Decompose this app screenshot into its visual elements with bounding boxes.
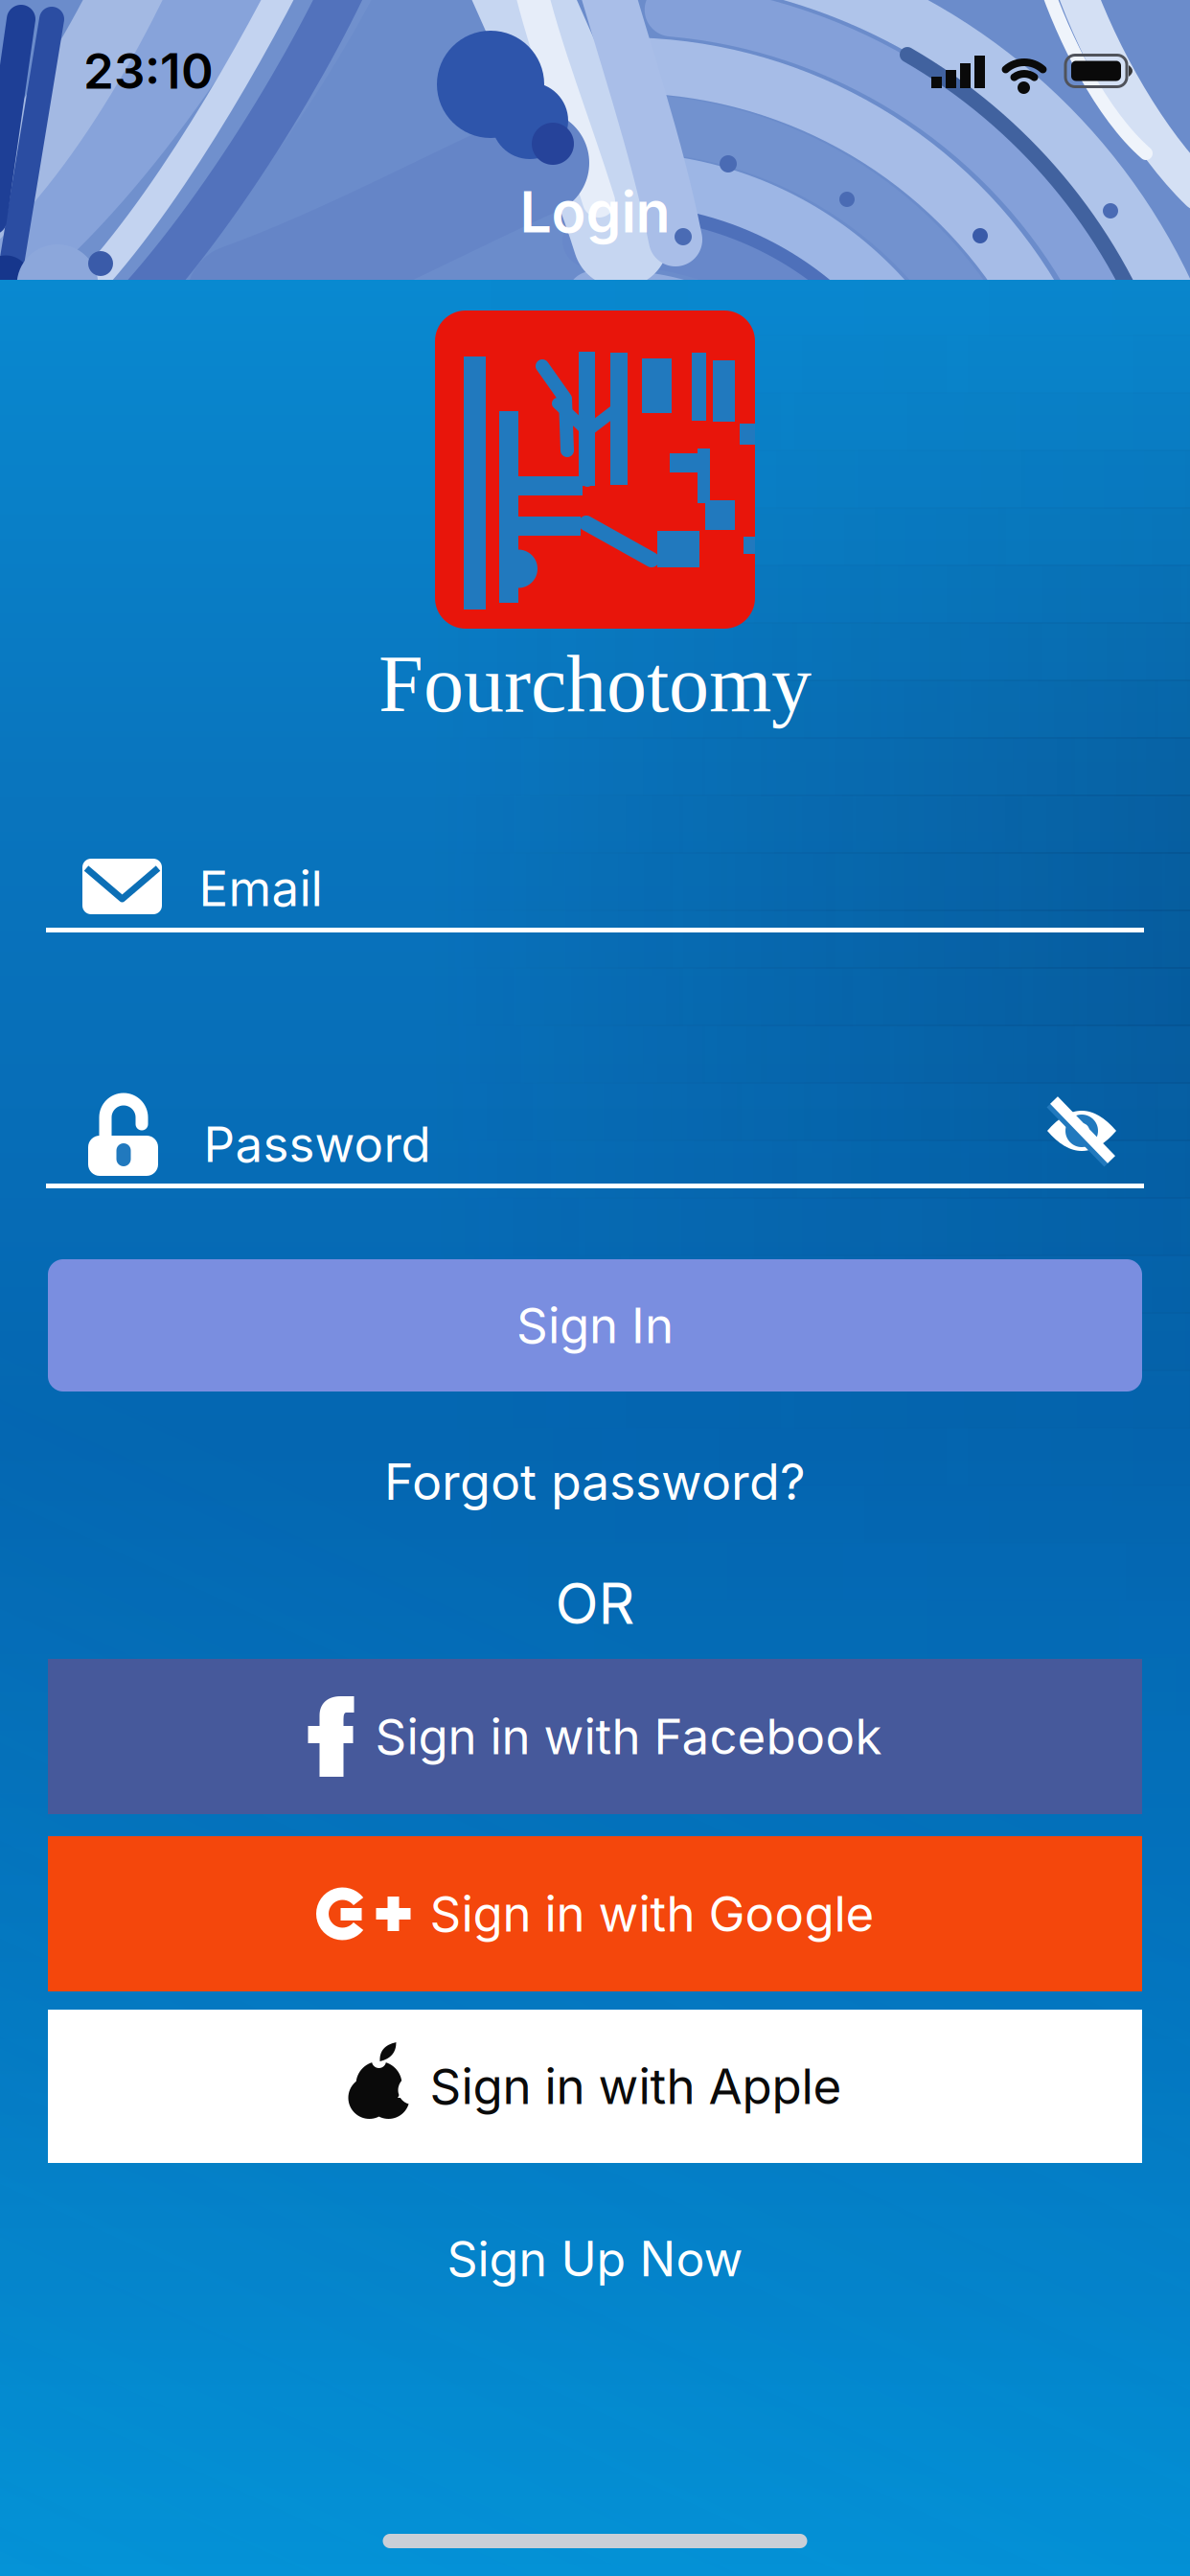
button[interactable]: Sign in with Facebook <box>48 1659 1142 1814</box>
button[interactable]: Forgot password? <box>384 1451 806 1512</box>
staticText: Sign in with Google <box>430 1884 874 1943</box>
staticText: Password <box>204 1115 431 1174</box>
button[interactable]: Sign in with Google <box>48 1836 1142 1991</box>
staticText: OR <box>555 1569 635 1638</box>
staticText: Login <box>520 178 670 246</box>
button[interactable]: Sign in with Apple <box>48 2010 1142 2163</box>
staticText: Fourchotomy <box>378 640 812 729</box>
staticText: Sign in with Apple <box>430 2057 842 2116</box>
staticText: Sign In <box>516 1296 674 1355</box>
staticText: Sign in with Facebook <box>375 1707 882 1766</box>
button[interactable]: Sign Up Now <box>447 2230 743 2288</box>
staticText: Sign Up Now <box>447 2230 743 2288</box>
button[interactable]: Password <box>0 1054 1190 1198</box>
staticText: Email <box>199 859 322 918</box>
staticText: 23:10 <box>83 41 214 100</box>
button[interactable]: Show password <box>1034 1087 1130 1179</box>
button[interactable]: Sign In <box>48 1259 1142 1391</box>
button[interactable]: Email <box>0 795 1190 939</box>
staticText: Forgot password? <box>384 1451 806 1512</box>
